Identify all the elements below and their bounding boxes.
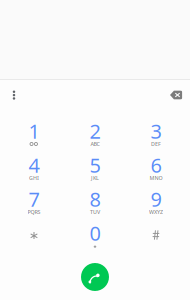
staticText: 4 [28, 152, 39, 178]
staticText: 1 [28, 118, 39, 144]
staticText: MNO [149, 174, 162, 182]
staticText: JKL [91, 174, 99, 182]
button[interactable]: Delete [163, 84, 189, 106]
button[interactable]: 7 [3, 185, 64, 219]
staticText: WXYZ [149, 208, 163, 216]
button[interactable]: 4 [3, 151, 64, 185]
staticText: 7 [28, 186, 39, 212]
staticText: DEF [151, 140, 161, 148]
button[interactable]: 6 [125, 151, 186, 185]
button[interactable]: 1 [3, 117, 64, 151]
staticText: ABC [90, 140, 99, 148]
button[interactable]: More options [1, 84, 27, 106]
button[interactable]: 9 [125, 185, 186, 219]
staticText: 9 [150, 186, 161, 212]
staticText: 8 [89, 186, 100, 212]
staticText: 2 [89, 118, 100, 144]
button[interactable] [3, 219, 64, 253]
button[interactable]: 0 [64, 219, 125, 253]
staticText: PQRS [27, 208, 40, 216]
staticText: TUV [90, 208, 100, 216]
button[interactable]: 5 [64, 151, 125, 185]
button[interactable]: 3 [125, 117, 186, 151]
staticText: 6 [150, 152, 161, 178]
staticText: 0 [89, 220, 100, 246]
button[interactable]: 8 [64, 185, 125, 219]
staticText: GHI [29, 174, 39, 182]
staticText: 3 [150, 118, 161, 144]
button[interactable] [125, 219, 186, 253]
button[interactable]: Call [81, 263, 109, 291]
button[interactable]: 2 [64, 117, 125, 151]
staticText: 5 [89, 152, 100, 178]
